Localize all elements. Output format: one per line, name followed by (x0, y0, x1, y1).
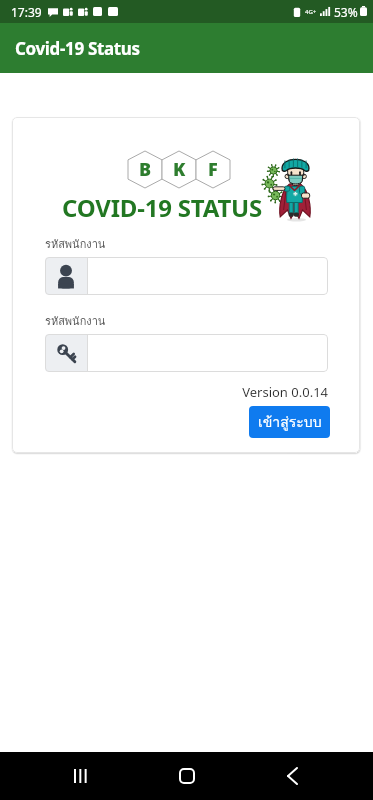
staticText: รหัสพนักงาน (45, 235, 106, 252)
staticText: 53% (334, 4, 358, 20)
staticText: B (139, 157, 152, 182)
staticText: เข้าสู่ระบบ (258, 411, 322, 433)
staticText: 17:39 (11, 4, 42, 20)
staticText: รหัสพนักงาน (45, 312, 106, 329)
button[interactable]: เข้าสู่ระบบ (249, 406, 330, 438)
button[interactable] (45, 334, 328, 372)
button[interactable] (45, 257, 328, 295)
button[interactable]: Recent apps (57, 752, 105, 800)
staticText: Covid-19 Status (15, 37, 140, 60)
staticText: COVID-19 STATUS (62, 191, 263, 224)
staticText: F (208, 157, 218, 182)
button[interactable]: Back (268, 752, 316, 800)
staticText: K (173, 157, 186, 182)
staticText: Version 0.0.14 (12, 383, 328, 401)
staticText: 4G+ (305, 8, 317, 16)
button[interactable]: Home (163, 752, 211, 800)
